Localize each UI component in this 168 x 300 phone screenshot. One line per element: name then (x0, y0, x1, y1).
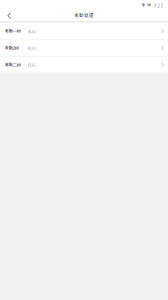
staticText: 考勤一组 (5, 28, 21, 34)
button[interactable]: 考勤一组 (0, 23, 168, 39)
button[interactable]: 考勤2组 (0, 40, 168, 56)
staticText: 3:23 (153, 2, 163, 9)
staticText: 考勤二组 (5, 61, 21, 68)
staticText: 考勤2组 (5, 45, 19, 51)
staticText: (0人) (28, 45, 36, 51)
button[interactable]: Back (0, 11, 18, 21)
button[interactable]: 考勤二组 (0, 57, 168, 72)
staticText: (3人) (28, 62, 36, 68)
staticText: (4人) (28, 28, 36, 34)
staticText: 考勤管理 (74, 12, 94, 19)
